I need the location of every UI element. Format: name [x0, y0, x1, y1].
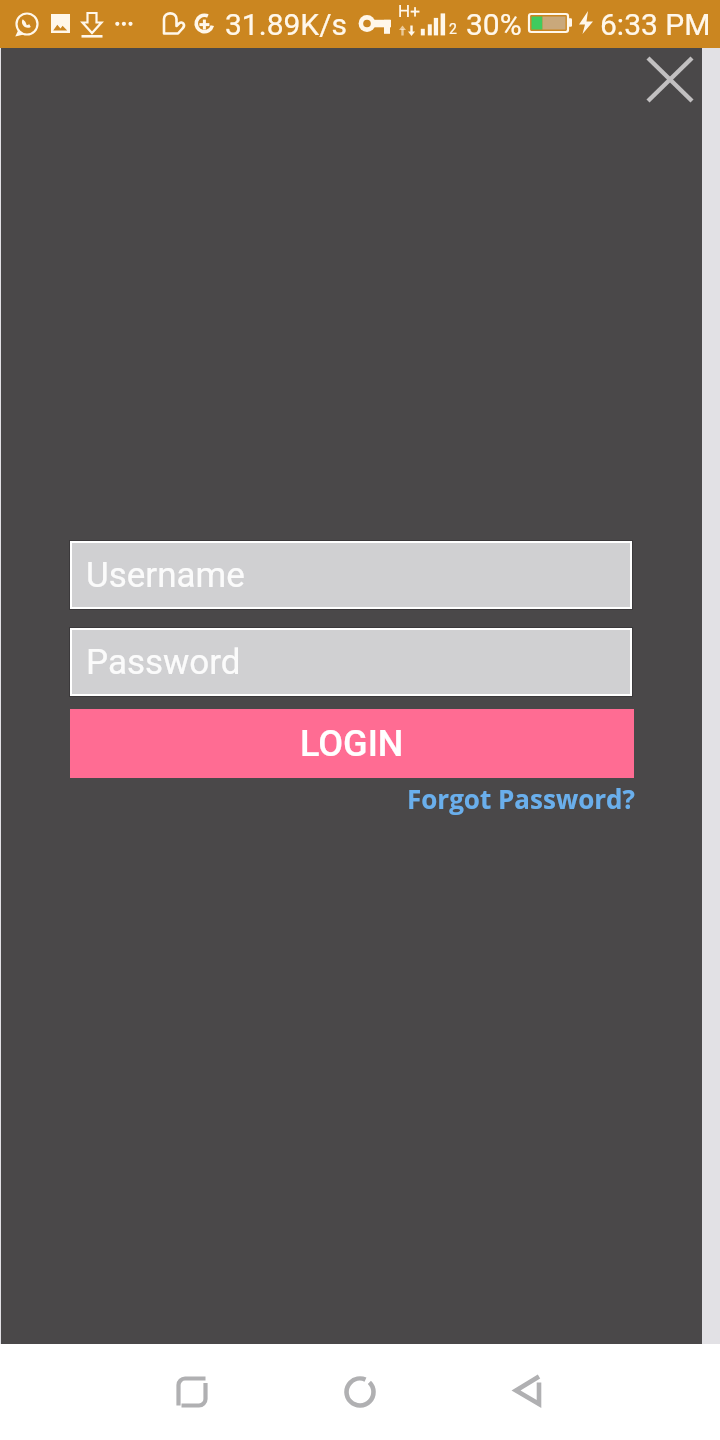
button[interactable]: Close: [622, 48, 702, 128]
staticText: 30%: [466, 7, 522, 42]
button[interactable]: Forgot Password?: [69, 778, 635, 818]
staticText: LOGIN: [300, 723, 404, 765]
button[interactable]: Back: [478, 1344, 574, 1440]
button[interactable]: LOGIN: [70, 709, 634, 778]
button[interactable]: Username: [70, 541, 632, 609]
staticText: H+: [398, 1, 420, 21]
staticText: 2: [449, 21, 457, 37]
button[interactable]: Home: [312, 1344, 408, 1440]
button[interactable]: Recents: [144, 1344, 240, 1440]
button[interactable]: Password: [70, 628, 632, 696]
staticText: Password: [86, 642, 241, 683]
staticText: Forgot Password?: [407, 781, 635, 816]
staticText: 31.89K/s: [225, 7, 348, 42]
staticText: Username: [86, 555, 245, 596]
staticText: 6:33 PM: [600, 7, 711, 42]
